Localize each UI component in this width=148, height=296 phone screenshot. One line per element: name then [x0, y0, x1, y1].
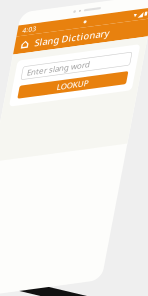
staticText: Slang Dictionary: [41, 39, 116, 52]
staticText: LOOKUP: [72, 89, 104, 99]
staticText: ⌂: [27, 39, 36, 52]
staticText: Enter slang word: [39, 70, 102, 80]
button[interactable]: LOOKUP: [34, 87, 143, 100]
staticText: 4:03: [26, 27, 40, 35]
